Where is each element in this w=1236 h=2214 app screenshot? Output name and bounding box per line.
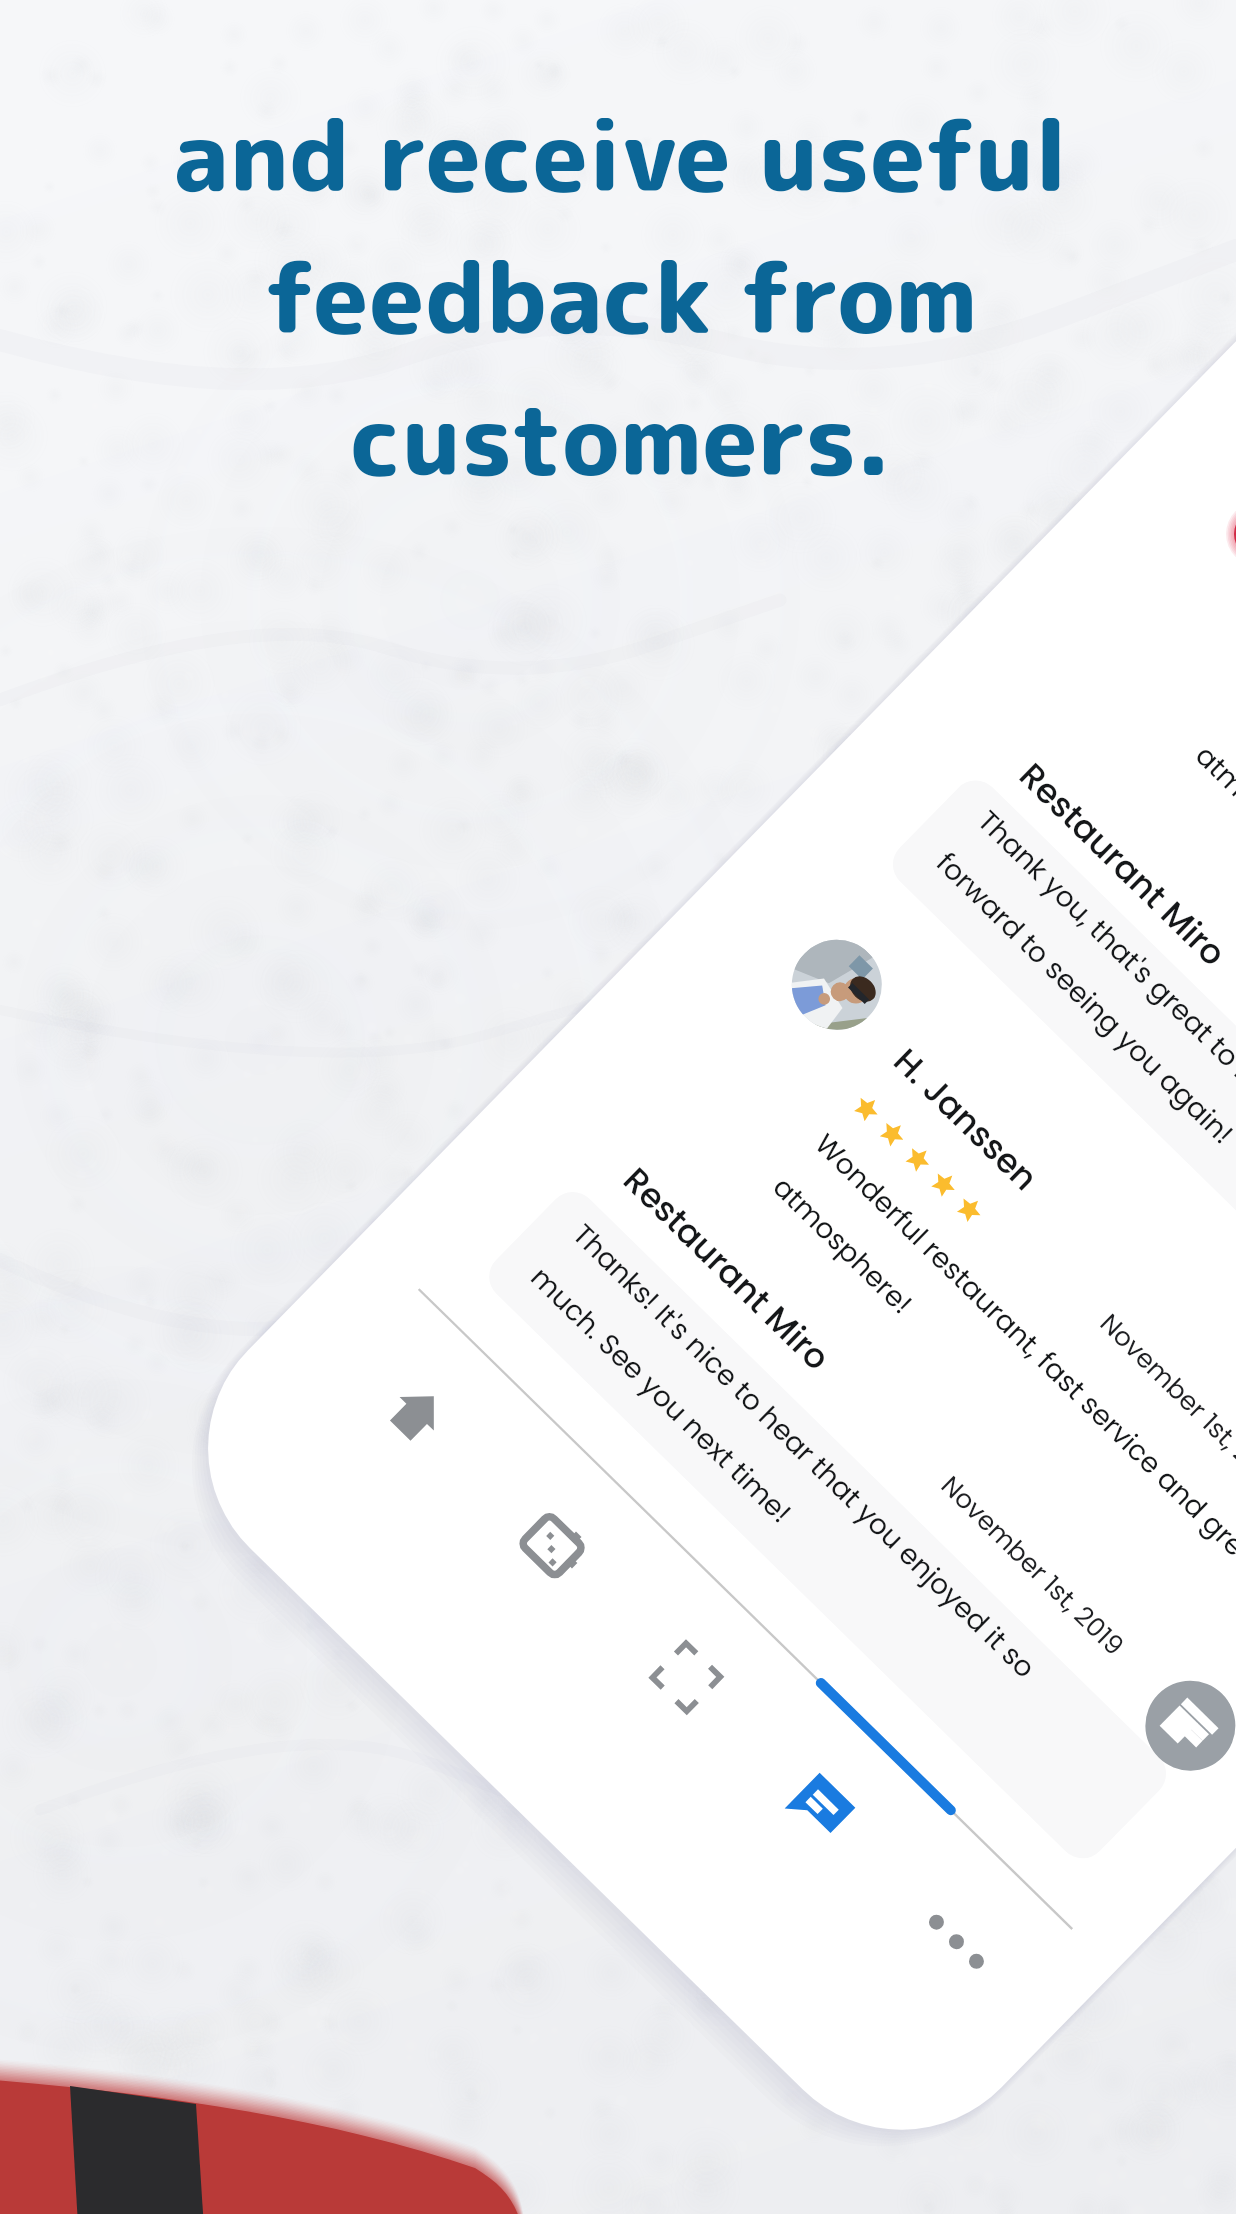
button[interactable] <box>635 904 1236 1710</box>
button[interactable]: Home <box>310 1283 547 1520</box>
button[interactable]: Scan code <box>579 1547 816 1784</box>
button[interactable]: H. Janssen profile photo <box>773 921 900 1048</box>
button[interactable]: Reviews <box>713 1678 950 1915</box>
button[interactable]: Messages <box>445 1416 682 1653</box>
button[interactable]: More options <box>849 1812 1086 2049</box>
button[interactable] <box>474 1147 1211 1874</box>
button[interactable] <box>883 711 1236 1456</box>
button[interactable]: New review <box>1127 1662 1236 1789</box>
